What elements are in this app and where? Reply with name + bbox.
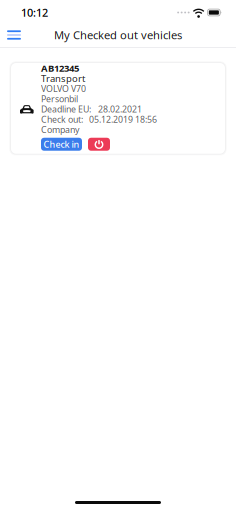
staticText: Transport — [41, 72, 85, 85]
staticText: 10:12 — [21, 5, 48, 20]
staticText: Check out: — [41, 113, 83, 125]
staticText: VOLVO V70 — [41, 83, 86, 95]
staticText: Company — [41, 124, 79, 136]
button[interactable]: Check out vehicle — [88, 138, 110, 151]
staticText: 05.12.2019 18:56 — [89, 113, 157, 125]
staticText: My Checked out vehicles — [54, 27, 182, 43]
button[interactable]: Menu — [0, 23, 28, 47]
staticText: Check in — [43, 138, 79, 150]
button[interactable]: Check in — [41, 138, 82, 151]
staticText: Deadline EU: — [41, 103, 91, 115]
staticText: 28.02.2021 — [98, 103, 142, 115]
staticText: Personbil — [41, 93, 78, 105]
staticText: AB12345 — [41, 62, 79, 75]
